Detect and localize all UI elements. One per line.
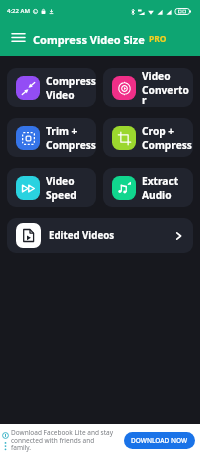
button[interactable]: Crop +	[103, 118, 193, 157]
staticText: Edited Videos	[49, 229, 115, 242]
staticText: 4:22 AM	[7, 7, 30, 15]
button[interactable]: Open navigation menu	[6, 27, 30, 51]
staticText: Extract	[142, 174, 179, 188]
button[interactable]: Compress	[7, 68, 96, 107]
staticText: Speed	[46, 188, 77, 202]
staticText: Compress	[46, 74, 96, 88]
staticText: Video	[46, 174, 75, 188]
staticText: Trim +	[46, 124, 78, 138]
button[interactable]: Trim +	[7, 118, 96, 157]
staticText: Convertor	[142, 83, 193, 107]
button[interactable]: Edited Videos	[7, 218, 193, 253]
staticText: Crop +	[142, 124, 175, 138]
staticText: Compress	[46, 138, 96, 152]
staticText: Compress	[142, 138, 192, 152]
button[interactable]: PRO	[149, 33, 167, 45]
button[interactable]: Video	[103, 68, 193, 107]
button[interactable]: Video	[7, 168, 96, 207]
staticText: Download Facebook Lite and stay connecte…	[11, 428, 114, 452]
staticText: Audio	[142, 188, 172, 202]
button[interactable]: Extract	[103, 168, 193, 207]
staticText: Video	[142, 69, 171, 83]
staticText: DOWNLOAD NOW	[131, 436, 188, 445]
button[interactable]: DOWNLOAD NOW	[124, 432, 195, 449]
staticText: Compress Video Size	[33, 32, 145, 47]
staticText: Video	[46, 88, 75, 102]
